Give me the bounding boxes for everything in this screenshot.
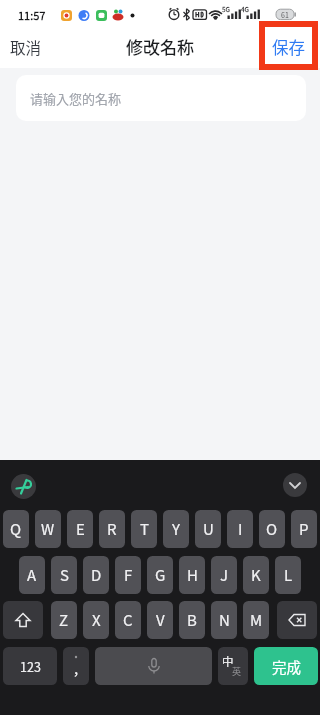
- staticText: ,: [74, 657, 79, 679]
- staticText: D: [91, 564, 102, 586]
- staticText: R: [107, 518, 117, 540]
- staticText: A: [27, 564, 37, 586]
- staticText: W: [41, 518, 55, 540]
- button[interactable]: [3, 601, 43, 639]
- staticText: 123: [20, 657, 41, 675]
- button[interactable]: Q: [3, 510, 29, 548]
- button[interactable]: M: [243, 601, 269, 639]
- button[interactable]: [283, 473, 307, 497]
- staticText: U: [203, 518, 214, 540]
- button[interactable]: [95, 647, 212, 685]
- button[interactable]: A: [19, 556, 45, 594]
- button[interactable]: T: [131, 510, 157, 548]
- button[interactable]: V: [147, 601, 173, 639]
- button[interactable]: X: [83, 601, 109, 639]
- staticText: S: [60, 564, 69, 586]
- staticText: C: [123, 609, 133, 631]
- staticText: G: [155, 564, 166, 586]
- staticText: J: [220, 564, 229, 586]
- staticText: 修改名称: [126, 34, 194, 59]
- staticText: K: [251, 564, 261, 586]
- button[interactable]: P: [291, 510, 317, 548]
- button[interactable]: N: [211, 601, 237, 639]
- button[interactable]: L: [275, 556, 301, 594]
- button[interactable]: J: [211, 556, 237, 594]
- button[interactable]: D: [83, 556, 109, 594]
- staticText: E: [76, 518, 85, 540]
- button[interactable]: W: [35, 510, 61, 548]
- staticText: V: [156, 609, 165, 631]
- button[interactable]: K: [243, 556, 269, 594]
- staticText: Q: [10, 518, 22, 540]
- staticText: 5G: [222, 4, 231, 13]
- button[interactable]: B: [179, 601, 205, 639]
- staticText: N: [219, 609, 230, 631]
- staticText: 取消: [10, 36, 42, 58]
- button[interactable]: ,: [63, 647, 89, 685]
- staticText: M: [250, 609, 263, 631]
- staticText: 中: [222, 653, 234, 670]
- button[interactable]: 中: [218, 647, 248, 685]
- button[interactable]: S: [51, 556, 77, 594]
- button[interactable]: I: [227, 510, 253, 548]
- button[interactable]: 保存: [272, 35, 305, 59]
- button[interactable]: G: [147, 556, 173, 594]
- staticText: 61: [281, 10, 289, 20]
- button[interactable]: H: [179, 556, 205, 594]
- staticText: I: [238, 518, 243, 540]
- button[interactable]: 123: [3, 647, 57, 685]
- staticText: X: [92, 609, 101, 631]
- button[interactable]: 完成: [254, 647, 318, 685]
- button[interactable]: 请输入您的名称: [16, 75, 306, 121]
- button[interactable]: Z: [51, 601, 77, 639]
- button[interactable]: E: [67, 510, 93, 548]
- button[interactable]: C: [115, 601, 141, 639]
- staticText: Z: [59, 609, 69, 631]
- staticText: 11:57: [18, 7, 46, 23]
- staticText: 请输入您的名称: [30, 89, 122, 108]
- staticText: T: [140, 518, 149, 540]
- staticText: Y: [172, 518, 180, 540]
- button[interactable]: F: [115, 556, 141, 594]
- button[interactable]: 取消: [10, 36, 42, 58]
- staticText: F: [124, 564, 133, 586]
- staticText: 英: [232, 665, 242, 678]
- button[interactable]: Y: [163, 510, 189, 548]
- staticText: 完成: [272, 656, 301, 677]
- staticText: H: [187, 564, 198, 586]
- button[interactable]: [277, 601, 317, 639]
- staticText: 4G: [241, 4, 250, 13]
- button[interactable]: R: [99, 510, 125, 548]
- button[interactable]: U: [195, 510, 221, 548]
- button[interactable]: [11, 474, 36, 499]
- staticText: O: [266, 518, 278, 540]
- staticText: P: [299, 518, 309, 540]
- staticText: L: [284, 564, 293, 586]
- button[interactable]: O: [259, 510, 285, 548]
- staticText: 保存: [272, 35, 305, 59]
- staticText: B: [187, 609, 197, 631]
